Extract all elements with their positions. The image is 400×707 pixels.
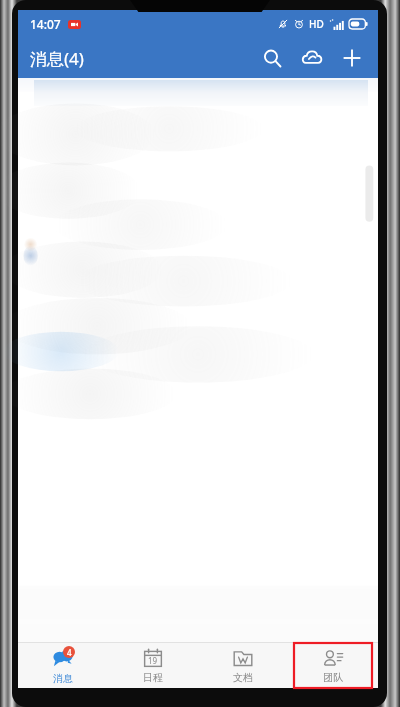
- button[interactable]: Add: [332, 38, 372, 78]
- staticText: HD: [309, 17, 324, 31]
- staticText: 消息(4): [30, 47, 84, 70]
- staticText: 14:07: [30, 16, 61, 32]
- staticText: 团队: [323, 671, 343, 684]
- staticText: 日程: [143, 671, 163, 684]
- button[interactable]: 团队: [294, 643, 372, 688]
- staticText: 19: [148, 655, 158, 666]
- staticText: 消息: [53, 672, 73, 685]
- button[interactable]: 19: [108, 643, 198, 688]
- button[interactable]: 文档: [198, 643, 288, 688]
- button[interactable]: Cloud: [292, 38, 332, 78]
- staticText: 文档: [233, 671, 253, 684]
- staticText: 4: [67, 647, 72, 658]
- button[interactable]: Search: [252, 38, 292, 78]
- button[interactable]: 4: [18, 643, 108, 688]
